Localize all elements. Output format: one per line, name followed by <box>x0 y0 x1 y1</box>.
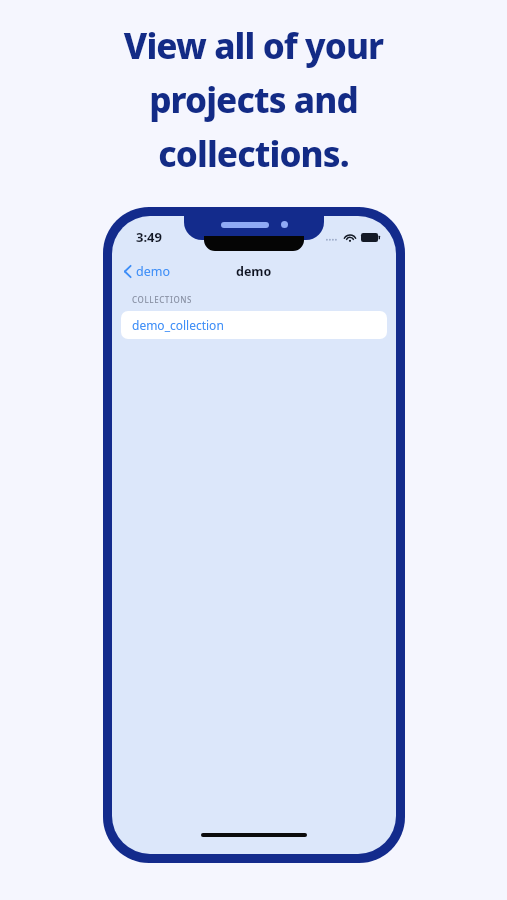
staticText: View all of your <box>24 22 483 70</box>
staticText: COLLECTIONS <box>132 294 193 305</box>
button[interactable]: Back <box>118 260 176 283</box>
staticText: collections. <box>24 130 483 178</box>
staticText: 3:49 <box>136 228 162 246</box>
button[interactable]: demo_collection <box>121 311 387 339</box>
staticText: projects and <box>24 76 483 124</box>
other: Back <box>124 265 131 278</box>
staticText: demo_collection <box>132 317 224 333</box>
staticText: demo <box>136 263 170 280</box>
staticText: demo <box>236 263 272 280</box>
